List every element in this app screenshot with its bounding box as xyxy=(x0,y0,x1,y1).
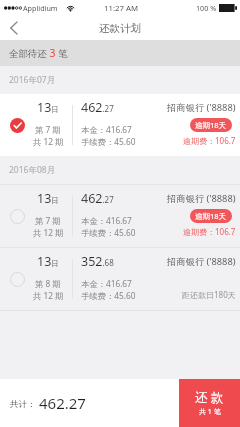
staticText: 462.27 xyxy=(81,190,114,207)
staticText: 2016年07月 xyxy=(9,74,56,86)
staticText: 招商银行 ('8888) xyxy=(167,192,236,205)
staticText: 招商银行 ('8888) xyxy=(167,255,236,268)
staticText: 第 8 期 xyxy=(35,278,61,289)
staticText: 11:27 AM xyxy=(104,3,139,14)
button[interactable]: 13日 xyxy=(0,248,240,310)
staticText: 2016年08月 xyxy=(9,164,56,176)
button[interactable]: 13日 xyxy=(0,185,240,247)
staticText: 还款计划 xyxy=(99,22,141,35)
staticText: 距还款日180天 xyxy=(182,289,236,300)
staticText: 共 12 期 xyxy=(33,290,64,301)
staticText: 13日 xyxy=(37,190,59,207)
staticText: 逾期费：106.7 xyxy=(183,135,236,146)
staticText: 逾期18天 xyxy=(195,120,227,130)
staticText: 第 7 期 xyxy=(35,215,61,226)
staticText: 本金：416.67 xyxy=(81,124,132,135)
staticText: 手续费：45.60 xyxy=(81,136,136,147)
staticText: 逾期费：106.7 xyxy=(183,226,236,237)
staticText: 还 款 xyxy=(195,389,224,406)
staticText: 本金：416.67 xyxy=(81,215,132,226)
button[interactable]: 13日 xyxy=(0,94,240,156)
staticText: 本金：416.67 xyxy=(81,278,132,289)
staticText: 共 12 期 xyxy=(33,136,64,147)
staticText: 共计： xyxy=(10,399,36,410)
button[interactable]: 还 款 xyxy=(179,379,240,427)
staticText: 逾期18天 xyxy=(195,211,227,221)
staticText: 13日 xyxy=(37,253,59,270)
staticText: 招商银行 ('8888) xyxy=(167,101,236,114)
staticText: 462.27 xyxy=(81,99,114,116)
staticText: Applidium xyxy=(23,3,58,13)
button[interactable]: Back xyxy=(0,16,28,40)
staticText: 第 7 期 xyxy=(35,124,61,135)
staticText: 352.68 xyxy=(81,253,114,270)
staticText: 100 % xyxy=(196,3,217,13)
staticText: 共 12 期 xyxy=(33,227,64,238)
staticText: 共 1 笔 xyxy=(199,407,221,417)
staticText: 手续费：45.60 xyxy=(81,227,136,238)
staticText: 13日 xyxy=(37,99,59,116)
staticText: 全部待还 3 笔 xyxy=(9,46,68,60)
staticText: 462.27 xyxy=(39,393,86,413)
staticText: 手续费：45.60 xyxy=(81,290,136,301)
